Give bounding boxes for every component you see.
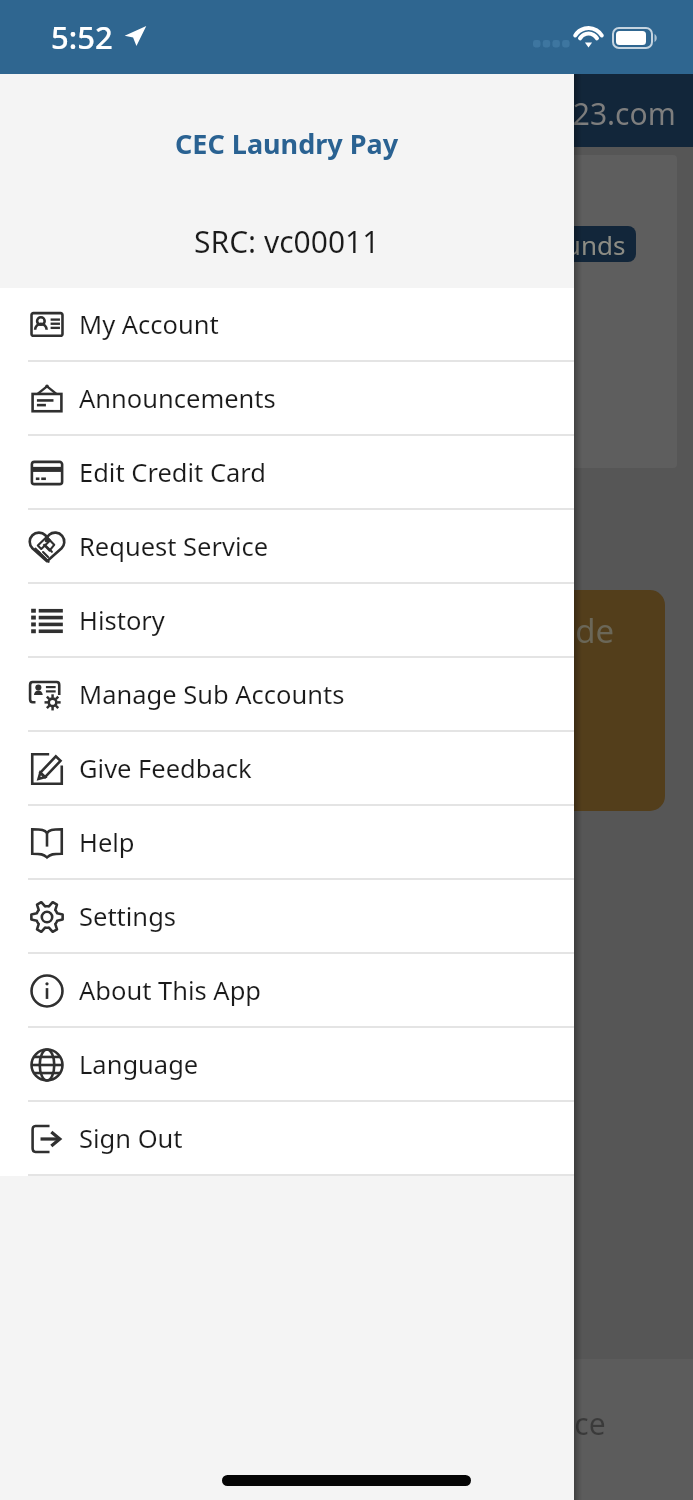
staticText: Sign Out <box>79 1121 183 1156</box>
button[interactable]: Request Service <box>0 1359 693 1500</box>
staticText: Edit Credit Card <box>79 455 267 490</box>
staticText: Add Funds <box>496 227 626 262</box>
staticText: Settings <box>79 899 177 934</box>
staticText: Help <box>79 825 135 860</box>
button[interactable]: My Account <box>0 288 574 362</box>
staticText: 5:52 <box>51 16 113 58</box>
button[interactable]: Announcements <box>0 362 574 436</box>
button[interactable]: Add Funds <box>467 226 636 262</box>
staticText: SRC: vc00011 <box>194 221 380 262</box>
staticText: History <box>79 603 165 638</box>
staticText: About This App <box>79 973 262 1008</box>
staticText: Request Service <box>79 529 269 564</box>
staticText: Language <box>79 1047 199 1082</box>
button[interactable]: Scan QR Code <box>16 590 665 811</box>
button[interactable]: History <box>0 584 574 658</box>
button[interactable]: Help <box>0 806 574 880</box>
button[interactable]: Settings <box>0 880 574 954</box>
button[interactable]: Edit Credit Card <box>0 436 574 510</box>
staticText: Announcements <box>79 381 276 416</box>
staticText: Give Feedback <box>79 751 252 786</box>
staticText: Manage Sub Accounts <box>79 677 345 712</box>
button[interactable]: Request Service <box>0 510 574 584</box>
staticText: cecpay.rm123.com <box>412 93 676 134</box>
button[interactable]: Manage Sub Accounts <box>0 658 574 732</box>
button[interactable]: Close navigation drawer <box>574 74 693 1500</box>
staticText: My Account <box>79 307 219 342</box>
staticText: Request Service <box>383 1403 606 1444</box>
staticText: Scan QR Code <box>398 608 615 653</box>
button[interactable]: Language <box>0 1028 574 1102</box>
button[interactable]: About This App <box>0 954 574 1028</box>
staticText: CEC Laundry Pay <box>175 125 399 162</box>
button[interactable]: Sign Out <box>0 1102 574 1176</box>
button[interactable]: Give Feedback <box>0 732 574 806</box>
